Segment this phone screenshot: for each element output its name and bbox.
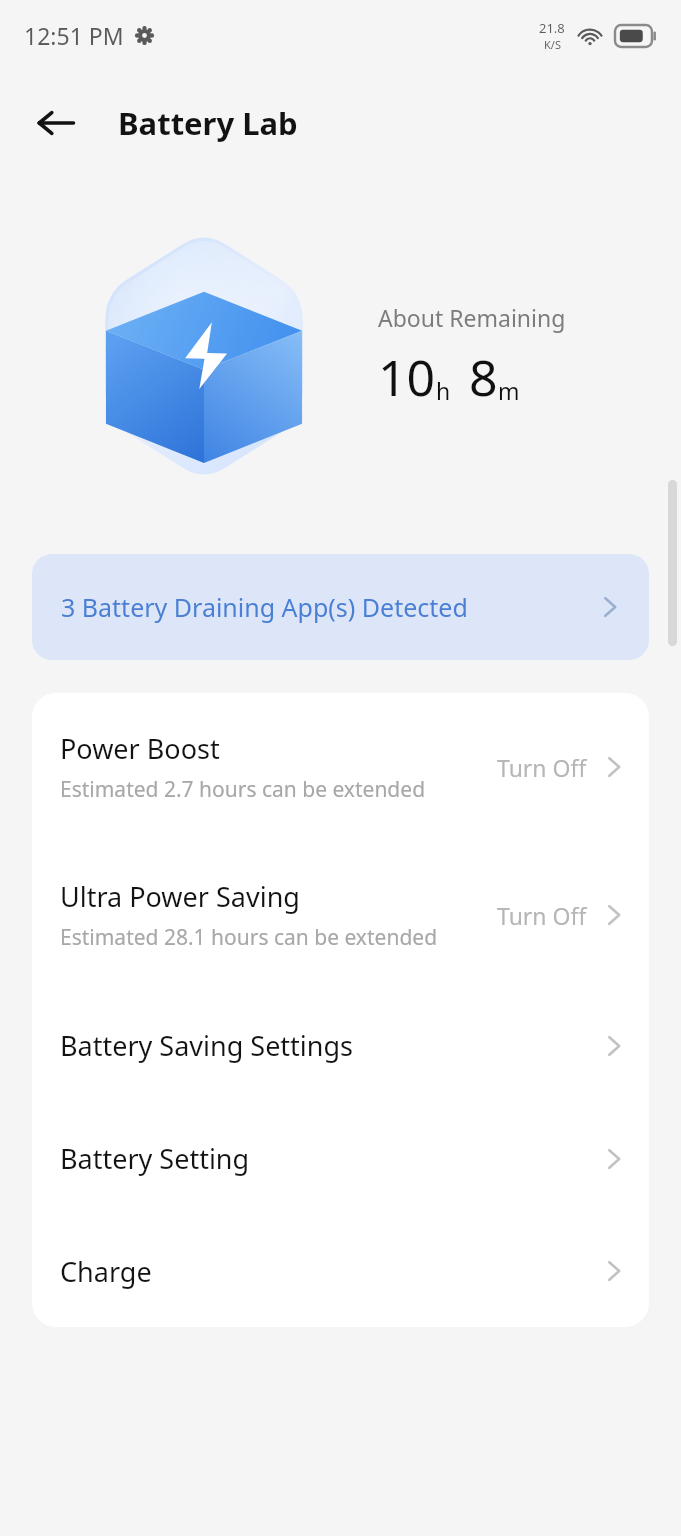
staticText: K/S	[544, 37, 561, 52]
staticText: 8	[469, 343, 498, 411]
staticText: About Remaining	[378, 302, 566, 333]
button[interactable]: Back	[28, 95, 84, 151]
staticText: Battery Setting	[60, 1140, 601, 1177]
button[interactable]: 3 Battery Draining App(s) Detected	[32, 554, 649, 660]
staticText: Turn Off	[497, 900, 587, 931]
staticText: 21.8	[539, 19, 565, 37]
staticText: Battery Lab	[118, 102, 298, 144]
staticText: Charge	[60, 1253, 601, 1290]
staticText: 10	[378, 343, 436, 411]
staticText: Ultra Power Saving	[60, 878, 300, 915]
button[interactable]: Power Boost	[32, 693, 649, 841]
staticText: Turn Off	[497, 752, 587, 783]
staticText: h	[436, 375, 451, 406]
staticText: Battery Saving Settings	[60, 1027, 601, 1064]
staticText: Estimated 2.7 hours can be extended	[60, 775, 426, 804]
button[interactable]: Ultra Power Saving	[32, 841, 649, 989]
staticText: 12:51 PM	[24, 20, 124, 51]
staticText: Power Boost	[60, 730, 220, 767]
staticText: m	[498, 375, 520, 406]
staticText: 3 Battery Draining App(s) Detected	[61, 590, 468, 624]
button[interactable]: Charge	[32, 1215, 649, 1327]
staticText: Estimated 28.1 hours can be extended	[60, 923, 438, 952]
button[interactable]: Battery Setting	[32, 1102, 649, 1215]
button[interactable]: Battery Saving Settings	[32, 989, 649, 1102]
